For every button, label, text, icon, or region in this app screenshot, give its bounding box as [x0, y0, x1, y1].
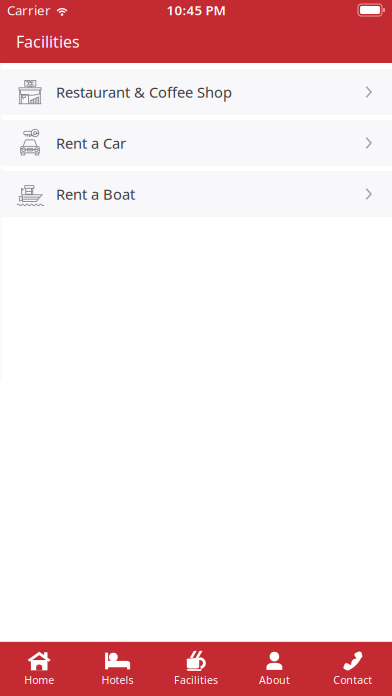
button[interactable]: Hotels — [78, 642, 157, 696]
staticText: Carrier — [7, 1, 51, 19]
staticText: 10:45 PM — [166, 1, 225, 19]
button[interactable]: Restaurant & Coffee Shop — [0, 69, 392, 115]
staticText: Restaurant & Coffee Shop — [56, 82, 232, 102]
staticText: Facilities — [174, 673, 218, 687]
button[interactable]: About — [235, 642, 314, 696]
button[interactable]: Rent a Car — [0, 120, 392, 166]
staticText: Home — [24, 673, 54, 687]
staticText: About — [259, 673, 290, 687]
button[interactable]: Facilities — [157, 642, 235, 696]
staticText: Hotels — [102, 673, 134, 687]
button[interactable]: Home — [0, 642, 78, 696]
staticText: Contact — [333, 673, 372, 687]
staticText: Rent a Car — [56, 133, 126, 153]
button[interactable]: Rent a Boat — [0, 171, 392, 217]
staticText: Rent a Boat — [56, 184, 135, 204]
staticText: Facilities — [16, 31, 80, 52]
button[interactable]: Contact — [314, 642, 392, 696]
